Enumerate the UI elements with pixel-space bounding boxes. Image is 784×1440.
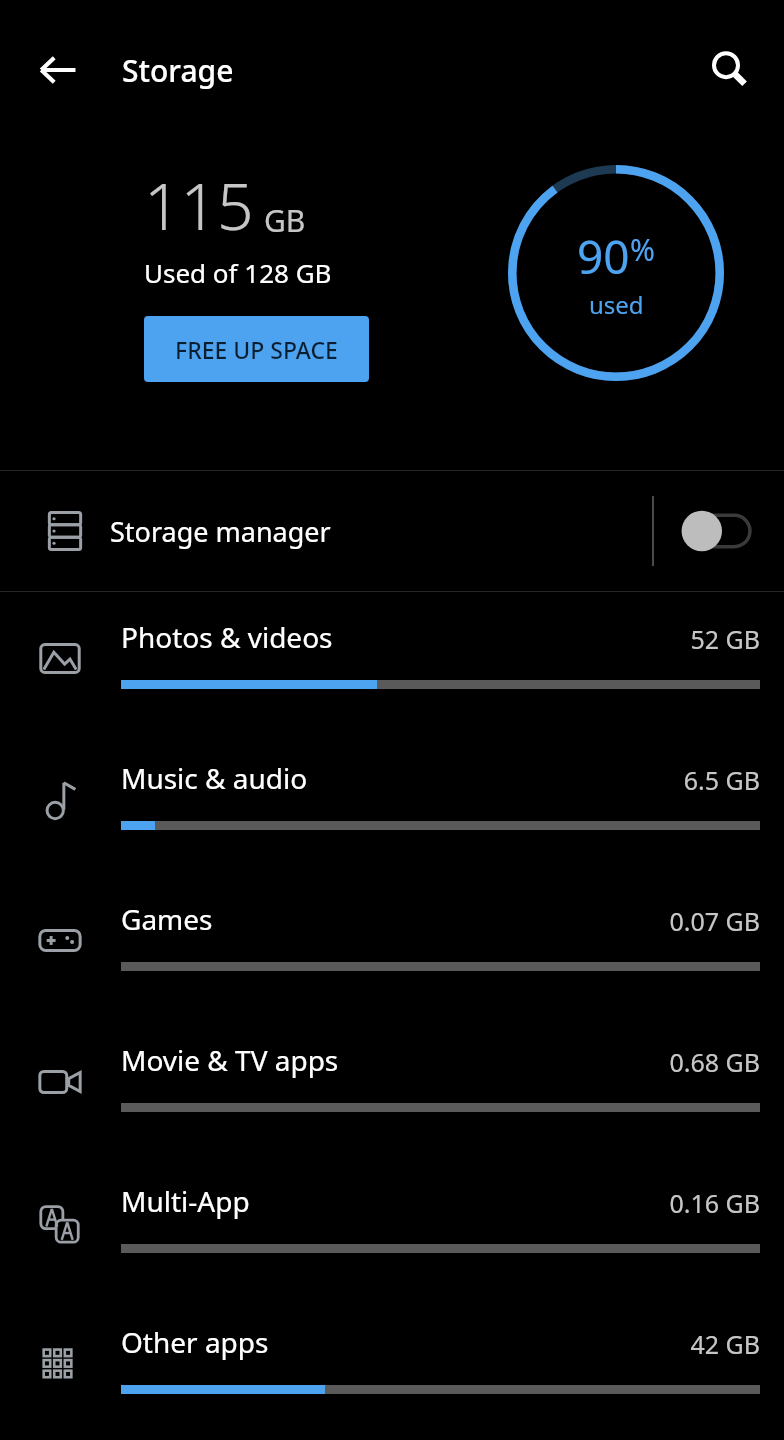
button[interactable]: Photos & videos: [0, 592, 784, 733]
button[interactable]: Movie & TV apps: [0, 1015, 784, 1156]
button[interactable]: Storage manager: [0, 471, 784, 591]
staticText: 115: [144, 162, 254, 249]
staticText: 0.16 GB: [669, 1186, 760, 1220]
button[interactable]: Other apps: [0, 1297, 784, 1438]
staticText: Storage manager: [110, 513, 331, 550]
staticText: 52 GB: [690, 622, 760, 656]
staticText: Storage: [122, 50, 234, 91]
button[interactable]: Back: [26, 38, 90, 102]
staticText: Movie & TV apps: [121, 1041, 339, 1079]
button[interactable]: Multi-App: [0, 1156, 784, 1297]
staticText: Used of 128 GB: [144, 255, 332, 290]
staticText: used: [589, 288, 644, 321]
staticText: 6.5 GB: [683, 763, 760, 797]
staticText: Other apps: [121, 1323, 269, 1361]
staticText: 0.68 GB: [669, 1045, 760, 1079]
staticText: Games: [121, 900, 213, 938]
button[interactable]: Search: [698, 38, 762, 102]
staticText: FREE UP SPACE: [175, 334, 338, 365]
staticText: Photos & videos: [121, 618, 333, 656]
button[interactable]: Storage manager toggle: [654, 471, 784, 591]
staticText: Music & audio: [121, 759, 308, 797]
button[interactable]: Games: [0, 874, 784, 1015]
staticText: 42 GB: [690, 1327, 760, 1361]
staticText: %: [630, 229, 655, 270]
staticText: 90: [577, 225, 630, 288]
staticText: GB: [264, 200, 306, 241]
staticText: Multi-App: [121, 1182, 250, 1220]
button[interactable]: Music & audio: [0, 733, 784, 874]
button[interactable]: FREE UP SPACE: [144, 316, 369, 382]
staticText: 0.07 GB: [669, 904, 760, 938]
